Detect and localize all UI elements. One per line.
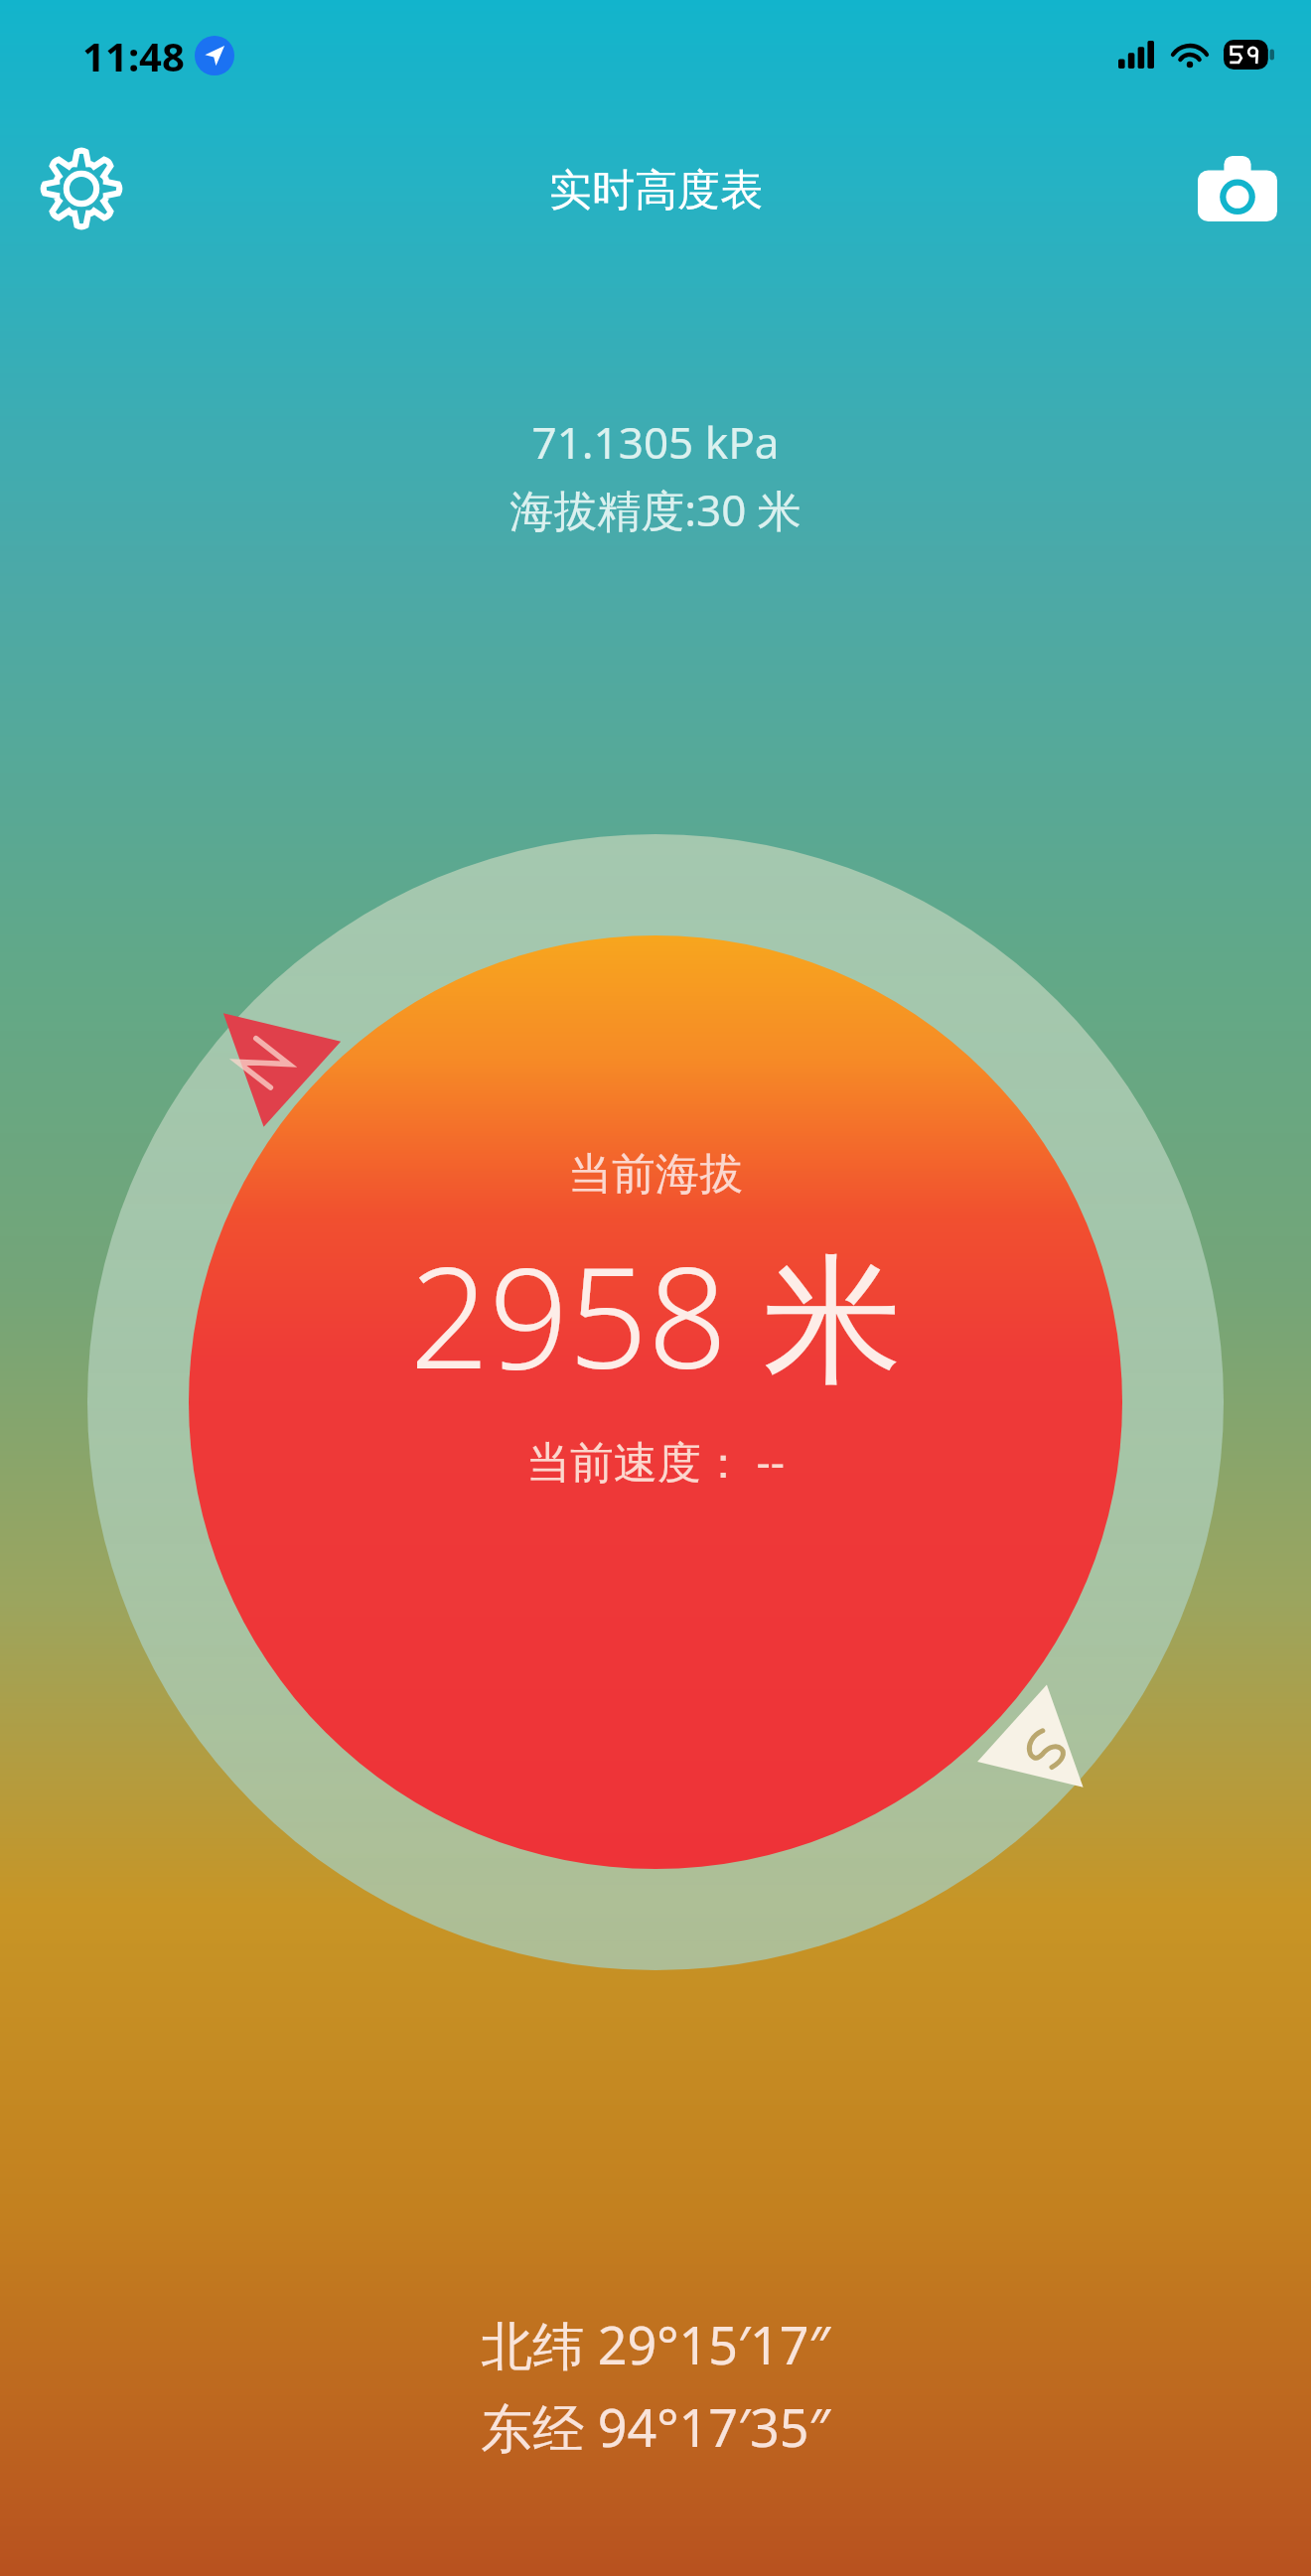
staticText: 海拔精度:30 米 (510, 480, 801, 539)
staticText: 2958 米 (409, 1219, 903, 1409)
staticText: 东经 94°17′35″ (481, 2391, 830, 2462)
staticText: 当前海拔 (568, 1147, 743, 1202)
button[interactable]: Settings (30, 138, 133, 238)
staticText: 71.1305 kPa (531, 412, 780, 472)
staticText: 北纬 29°15′17″ (481, 2309, 830, 2379)
staticText: 11:48 (82, 29, 185, 82)
staticText: 实时高度表 (549, 164, 763, 217)
staticText: 当前速度： -- (526, 1431, 785, 1491)
button[interactable]: Camera (1186, 138, 1289, 238)
